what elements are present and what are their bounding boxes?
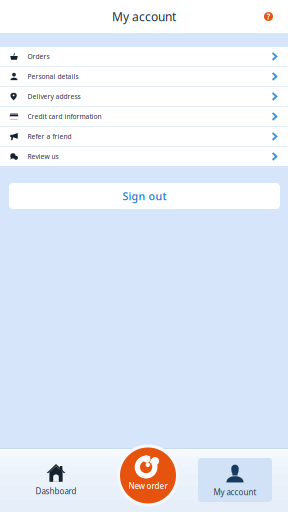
button[interactable]: Help [264,12,288,21]
button[interactable]: Personal details [0,67,288,86]
button[interactable]: Refer a friend [0,127,288,146]
button[interactable]: Review us [0,147,288,166]
button[interactable]: Sign out [9,183,280,209]
staticText: Sign out [122,189,166,203]
button[interactable]: Delivery address [0,87,288,106]
staticText: Review us [27,152,58,161]
staticText: ? [266,11,270,22]
button[interactable]: Credit card information [0,107,288,126]
staticText: Personal details [27,72,78,81]
button[interactable]: Dashboard [19,458,93,502]
button[interactable]: New order [120,447,176,503]
button[interactable]: Orders [0,47,288,66]
staticText: My account [112,8,176,24]
staticText: Delivery address [27,92,80,101]
button[interactable]: My account [198,458,272,502]
staticText: Refer a friend [27,132,71,141]
staticText: New order [128,480,167,491]
staticText: Orders [27,52,49,61]
staticText: My account [213,487,256,497]
staticText: Dashboard [35,486,76,496]
staticText: Credit card information [27,112,101,121]
